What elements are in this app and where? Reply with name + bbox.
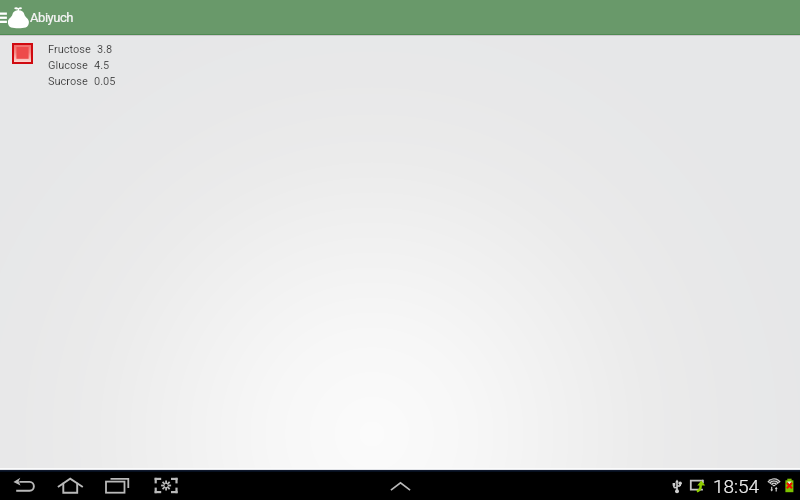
button[interactable]: Recent apps: [98, 472, 136, 500]
staticText: 3.8: [97, 43, 113, 56]
button[interactable]: Screenshot: [146, 472, 184, 500]
button[interactable]: Sucrose: [48, 73, 116, 89]
staticText: 4.5: [94, 59, 110, 72]
button[interactable]: Home: [50, 472, 90, 500]
button[interactable]: Menu: [0, 0, 7, 34]
button[interactable]: Show notifications: [383, 472, 417, 500]
staticText: 0.05: [94, 75, 116, 88]
button[interactable]: Fructose: [48, 41, 113, 57]
staticText: Glucose: [48, 59, 88, 72]
button[interactable]: Glucose: [48, 57, 110, 73]
staticText: Fructose: [48, 43, 91, 56]
staticText: 18:54: [713, 475, 760, 497]
button[interactable]: [12, 43, 33, 64]
button[interactable]: Status: [664, 472, 800, 500]
staticText: Sucrose: [48, 75, 88, 88]
button[interactable]: Back: [7, 472, 43, 500]
staticText: Abiyuch: [30, 10, 74, 25]
